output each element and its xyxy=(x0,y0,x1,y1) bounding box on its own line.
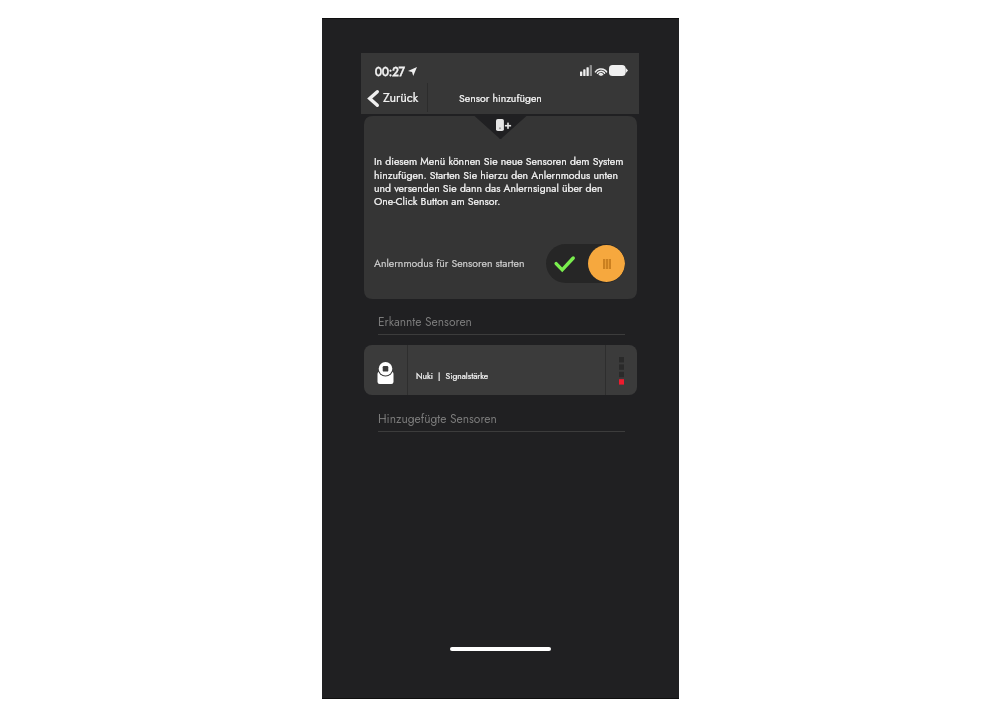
staticText: Zurück xyxy=(383,89,419,107)
staticText: In diesem Menü können Sie neue Sensoren … xyxy=(374,154,624,209)
staticText: Sensor hinzufügen xyxy=(459,91,542,106)
staticText: Anlernmodus für Sensoren starten xyxy=(374,256,525,271)
staticText: Erkannte Sensoren xyxy=(378,313,472,330)
button[interactable]: Zurück xyxy=(361,83,427,113)
staticText: Nuki | Signalstärke xyxy=(416,370,489,382)
button[interactable]: Anlernmodus für Sensoren starten xyxy=(546,244,625,283)
button[interactable]: Nuki | Signalstärke xyxy=(364,345,637,395)
staticText: 00:27 xyxy=(375,64,405,81)
staticText: Hinzugefügte Sensoren xyxy=(378,410,497,427)
